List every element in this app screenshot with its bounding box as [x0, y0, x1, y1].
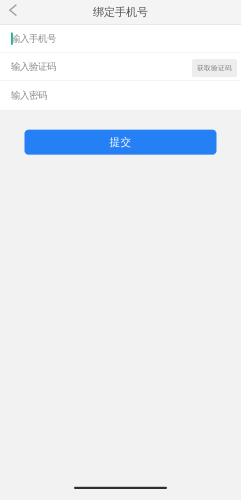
staticText: 获取验证码 — [197, 64, 232, 72]
staticText: 输入密码 — [11, 89, 47, 101]
button[interactable]: 提交 — [24, 130, 216, 155]
button[interactable]: 获取验证码 — [192, 56, 237, 77]
staticText: 绑定手机号 — [93, 5, 148, 19]
staticText: 输入手机号 — [11, 33, 56, 45]
button[interactable]: Back — [0, 0, 30, 24]
staticText: 输入验证码 — [11, 61, 56, 73]
staticText: 提交 — [109, 136, 131, 149]
